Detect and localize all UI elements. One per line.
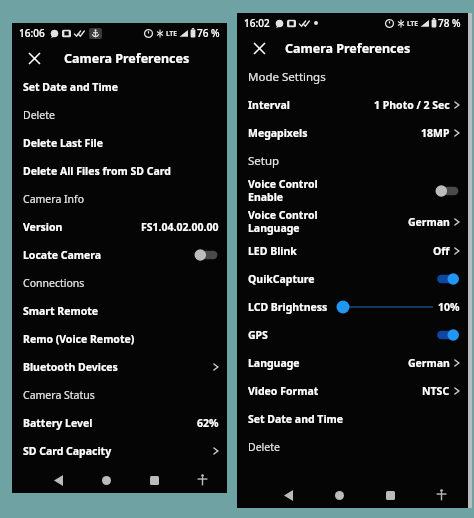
button[interactable]: Language	[237, 349, 468, 377]
button[interactable]: Interval	[237, 91, 468, 119]
button[interactable]: Voice Control Language	[237, 206, 468, 237]
staticText: Megapixels	[248, 126, 308, 140]
staticText: Camera Info	[23, 192, 85, 206]
staticText: LED Blink	[248, 244, 297, 258]
button[interactable]: Accessibility	[191, 469, 213, 491]
staticText: Voice Control Language	[248, 208, 318, 235]
button[interactable]: Close	[23, 47, 45, 69]
button[interactable]: Back	[277, 484, 299, 506]
staticText: Mode Settings	[248, 69, 326, 85]
staticText: LTE	[166, 29, 177, 38]
staticText: Delete All Files from SD Card	[23, 164, 171, 178]
staticText: Set Date and Time	[248, 412, 344, 426]
staticText: 78 %	[438, 16, 461, 30]
button[interactable]: Version	[12, 213, 227, 241]
staticText: Set Date and Time	[23, 80, 119, 94]
button[interactable]: QuikCapture	[237, 265, 468, 293]
staticText: GPS	[248, 328, 268, 342]
button[interactable]: Remo (Voice Remote)	[12, 325, 227, 353]
button[interactable]: SD Card Capacity	[12, 437, 227, 465]
staticText: Camera Preferences	[64, 50, 190, 67]
button[interactable]: Toggle off	[434, 183, 460, 199]
staticText: Language	[248, 356, 300, 370]
staticText: Battery Level	[23, 416, 93, 430]
staticText: Delete Last File	[23, 136, 103, 150]
staticText: Voice Control Enable	[248, 177, 318, 204]
button[interactable]: Close	[248, 37, 270, 59]
staticText: Off	[433, 244, 450, 258]
staticText: Locate Camera	[23, 248, 102, 262]
staticText: German	[408, 356, 450, 370]
staticText: NTSC	[422, 384, 450, 398]
staticText: Version	[23, 220, 63, 234]
staticText: German	[408, 215, 450, 229]
button[interactable]: Video Format	[237, 377, 468, 405]
staticText: Smart Remote	[23, 304, 99, 318]
staticText: Interval	[248, 98, 290, 112]
button[interactable]: Smart Remote	[12, 297, 227, 325]
button[interactable]: LED Blink	[237, 237, 468, 265]
button[interactable]: Battery Level	[12, 409, 227, 437]
button[interactable]: Delete	[12, 101, 227, 129]
button[interactable]: Set Date and Time	[12, 73, 227, 101]
staticText: Setup	[248, 153, 280, 169]
staticText: 10%	[438, 300, 460, 314]
staticText: Remo (Voice Remote)	[23, 332, 135, 346]
button[interactable]: Camera Status	[12, 381, 227, 409]
staticText: FS1.04.02.00.00	[141, 220, 219, 234]
button[interactable]: Back	[47, 469, 69, 491]
staticText: Camera Status	[23, 388, 95, 402]
button[interactable]: Recent apps	[379, 484, 401, 506]
button[interactable]: Voice Control Enable	[237, 175, 468, 206]
button[interactable]: Set Date and Time	[237, 405, 468, 433]
button[interactable]: Mode Settings	[237, 63, 468, 91]
button[interactable]: Megapixels	[237, 119, 468, 147]
button[interactable]: Home	[328, 484, 350, 506]
button[interactable]: Camera Info	[12, 185, 227, 213]
staticText: Delete	[23, 108, 55, 122]
staticText: 76 %	[197, 26, 220, 40]
button[interactable]: GPS	[237, 321, 468, 349]
staticText: Delete	[248, 440, 280, 454]
button[interactable]: Toggle on	[434, 271, 460, 287]
staticText: Bluetooth Devices	[23, 360, 118, 374]
staticText: Camera Preferences	[285, 40, 411, 57]
button[interactable]: Bluetooth Devices	[12, 353, 227, 381]
staticText: QuikCapture	[248, 272, 315, 286]
button[interactable]: Toggle on	[434, 327, 460, 343]
button[interactable]: Connections	[12, 269, 227, 297]
staticText: Video Format	[248, 384, 319, 398]
staticText: LTE	[407, 19, 418, 28]
staticText: 62%	[197, 416, 219, 430]
button[interactable]: Accessibility	[430, 484, 452, 506]
button[interactable]: LCD Brightness	[237, 293, 468, 321]
staticText: SD Card Capacity	[23, 444, 112, 458]
button[interactable]: Home	[95, 469, 117, 491]
staticText: LCD Brightness	[248, 300, 328, 314]
staticText: Connections	[23, 276, 85, 290]
button[interactable]: Recent apps	[143, 469, 165, 491]
staticText: 16:02	[244, 16, 270, 30]
staticText: 16:06	[19, 26, 45, 40]
button[interactable]: Delete	[237, 433, 468, 461]
staticText: 1 Photo / 2 Sec	[374, 98, 450, 112]
staticText: 18MP	[421, 126, 450, 140]
button[interactable]: Toggle off	[193, 247, 219, 263]
button[interactable]: Delete Last File	[12, 129, 227, 157]
button[interactable]: Setup	[237, 147, 468, 175]
button[interactable]	[335, 297, 435, 317]
button[interactable]: Delete All Files from SD Card	[12, 157, 227, 185]
button[interactable]: Locate Camera	[12, 241, 227, 269]
